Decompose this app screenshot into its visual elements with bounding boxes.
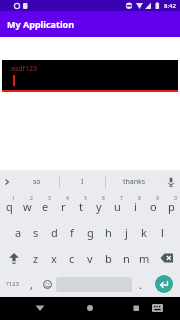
staticText: f	[70, 225, 74, 240]
button[interactable]: j	[117, 219, 135, 245]
button[interactable]: q	[0, 193, 18, 219]
button[interactable]	[120, 297, 180, 320]
button[interactable]: e	[36, 193, 54, 219]
staticText: 2	[30, 195, 33, 202]
staticText: 8:42	[164, 2, 176, 10]
button[interactable]: x	[45, 245, 63, 271]
staticText: s	[33, 225, 39, 240]
staticText: 1	[12, 195, 15, 202]
staticText: thanks	[123, 177, 146, 187]
button[interactable]	[60, 297, 120, 320]
staticText: z	[33, 251, 39, 266]
staticText: m	[139, 251, 150, 266]
staticText: a	[15, 225, 22, 240]
staticText: g	[87, 225, 94, 240]
button[interactable]: so	[14, 170, 59, 193]
staticText: 8	[138, 195, 141, 202]
staticText: o	[150, 199, 157, 214]
button[interactable]: v	[81, 245, 99, 271]
staticText: b	[105, 251, 112, 266]
button[interactable]: d	[45, 219, 63, 245]
button[interactable]: z	[27, 245, 45, 271]
staticText: u	[114, 199, 121, 214]
staticText: ,	[30, 277, 33, 292]
button[interactable]	[0, 297, 60, 320]
staticText: 9	[156, 195, 159, 202]
staticText: so	[33, 177, 41, 187]
button[interactable]: i	[126, 193, 144, 219]
button[interactable]: p	[162, 193, 180, 219]
staticText: ?123	[6, 280, 19, 288]
staticText: h	[105, 225, 112, 240]
staticText: t	[79, 199, 83, 214]
staticText: y	[96, 199, 102, 214]
staticText: q	[6, 199, 13, 214]
staticText: 0	[174, 195, 177, 202]
staticText: i	[134, 199, 137, 214]
staticText: 4	[66, 195, 69, 202]
button[interactable]: .	[132, 271, 148, 297]
staticText: c	[69, 251, 75, 266]
button[interactable]: t	[72, 193, 90, 219]
staticText: 7	[120, 195, 123, 202]
staticText: r	[61, 199, 66, 214]
button[interactable]: c	[63, 245, 81, 271]
staticText: 5	[84, 195, 87, 202]
button[interactable]	[148, 271, 180, 297]
staticText: I	[81, 177, 84, 187]
button[interactable]: ?123	[0, 271, 24, 297]
button[interactable]	[153, 245, 180, 271]
button[interactable]	[0, 170, 14, 193]
staticText: e	[42, 199, 49, 214]
staticText: v	[87, 251, 93, 266]
button[interactable]	[162, 170, 180, 193]
button[interactable]: g	[81, 219, 99, 245]
button[interactable]: m	[135, 245, 153, 271]
button[interactable]: w	[18, 193, 36, 219]
button[interactable]: u	[108, 193, 126, 219]
button[interactable]: thanks	[106, 170, 162, 193]
button[interactable]	[155, 275, 173, 293]
staticText: l	[161, 225, 164, 240]
staticText: w	[23, 199, 32, 214]
button[interactable]: o	[144, 193, 162, 219]
button[interactable]: l	[153, 219, 171, 245]
button[interactable]: a	[9, 219, 27, 245]
button[interactable]: My Application	[0, 11, 180, 37]
staticText: x	[51, 251, 57, 266]
button[interactable]: asdf123	[2, 60, 178, 92]
staticText: p	[168, 199, 175, 214]
staticText: My Application	[7, 18, 75, 30]
button[interactable]: ,	[24, 271, 39, 297]
button[interactable]	[0, 245, 27, 271]
staticText: 6	[102, 195, 105, 202]
staticText: n	[123, 251, 130, 266]
button[interactable]: r	[54, 193, 72, 219]
staticText: d	[51, 225, 58, 240]
button[interactable]: I	[60, 170, 105, 193]
button[interactable]: h	[99, 219, 117, 245]
button[interactable]: b	[99, 245, 117, 271]
button[interactable]: s	[27, 219, 45, 245]
button[interactable]	[39, 271, 56, 297]
staticText: asdf123	[11, 64, 38, 74]
staticText: j	[125, 225, 128, 240]
button[interactable]: n	[117, 245, 135, 271]
staticText: 3	[48, 195, 51, 202]
staticText: k	[141, 225, 147, 240]
button[interactable]: f	[63, 219, 81, 245]
button[interactable]: k	[135, 219, 153, 245]
staticText: .	[139, 277, 142, 292]
button[interactable]: y	[90, 193, 108, 219]
